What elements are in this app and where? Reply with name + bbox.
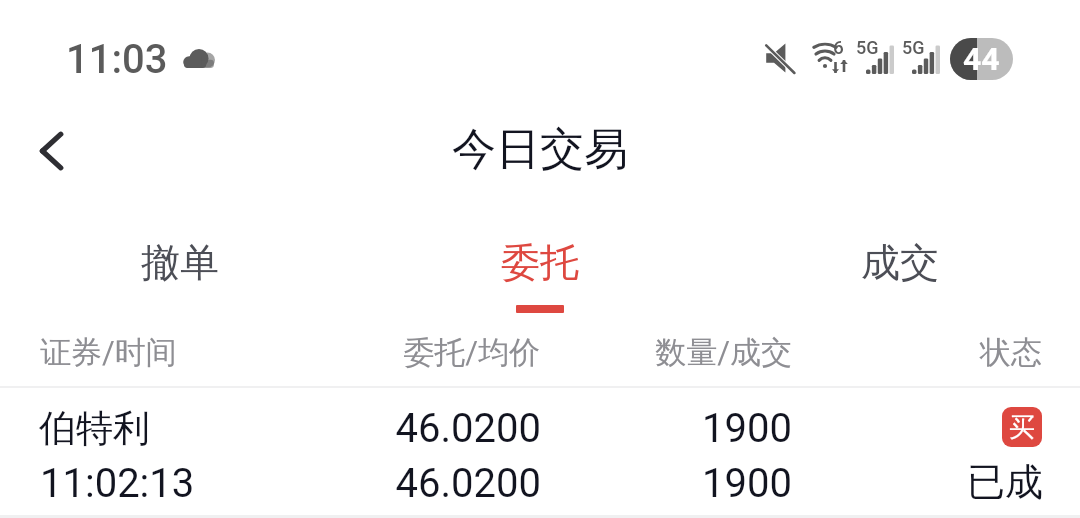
staticText: 6 [833, 36, 844, 58]
staticText: 买 [1009, 411, 1035, 444]
staticText: 状态 [0, 333, 1042, 372]
staticText: 44 [963, 40, 1000, 78]
staticText: 1900 [0, 405, 792, 452]
staticText: 委托 [501, 238, 579, 287]
staticText: 今日交易 [0, 122, 1080, 177]
staticText: 46.0200 [0, 405, 541, 452]
staticText: 5G [856, 37, 879, 58]
button[interactable]: 伯特利 [0, 386, 1080, 514]
staticText: 1900 [0, 460, 792, 507]
staticText: 46.0200 [0, 460, 541, 507]
staticText: 数量/成交 [0, 333, 792, 372]
staticText: 已成 [0, 458, 1043, 506]
button[interactable]: 成交 [720, 214, 1080, 319]
staticText: 5G [902, 37, 925, 58]
staticText: 伯特利 [39, 405, 150, 452]
button[interactable]: 委托 [360, 214, 720, 319]
staticText: 证券/时间 [40, 333, 177, 372]
staticText: 委托/均价 [0, 333, 540, 372]
staticText: 成交 [861, 238, 939, 287]
staticText: 11:02:13 [40, 460, 195, 507]
staticText: 撤单 [141, 238, 219, 287]
button[interactable]: 撤单 [0, 214, 360, 319]
button[interactable]: Back [14, 113, 90, 189]
staticText: 11:03 [66, 36, 168, 83]
